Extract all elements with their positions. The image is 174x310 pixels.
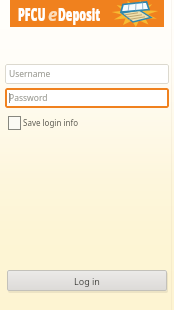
staticText: Deposit [58,3,100,26]
staticText: Username [9,68,51,80]
button[interactable]: Save login info [8,114,79,131]
staticText: Save login info [23,117,79,128]
other: eDeposit logo [112,0,160,27]
staticText: Log in [74,275,100,287]
staticText: PFCU [18,3,46,26]
staticText: Password [9,92,48,104]
staticText: e [48,3,58,26]
button[interactable]: Log in [7,270,167,291]
button[interactable]: Username [5,64,169,84]
button[interactable]: Password [5,88,169,108]
